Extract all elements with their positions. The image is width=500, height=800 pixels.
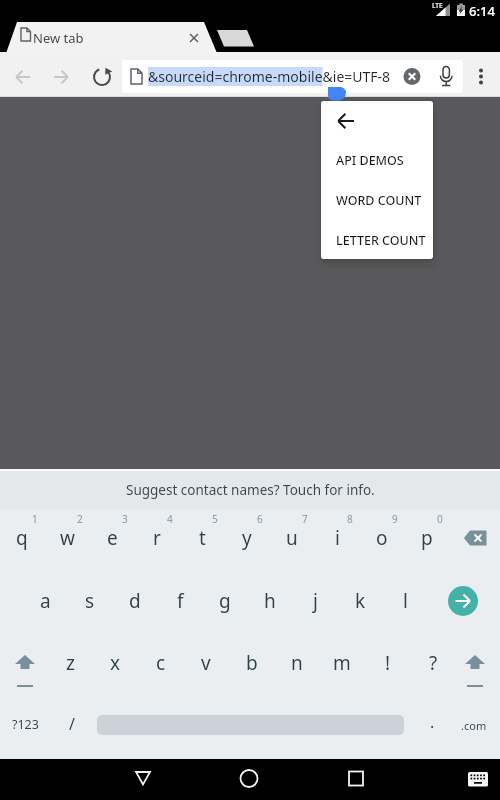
button[interactable]: ?123 [3,709,47,739]
staticText: y [242,525,252,551]
staticText: i [335,525,340,551]
staticText: r [153,525,161,551]
button[interactable]: .com [454,712,494,738]
button[interactable]: h [248,584,292,618]
staticText: New tab [33,29,84,47]
staticText: WORD COUNT [336,192,422,209]
button[interactable]: LETTER COUNT [321,220,433,259]
button[interactable]: . [417,707,447,737]
button[interactable] [453,523,497,553]
staticText: u [286,525,298,551]
staticText: 4 [167,512,173,526]
staticText: 6:14 [469,2,495,20]
button[interactable]: New tab [13,25,103,51]
button[interactable] [0,97,500,469]
staticText: 7 [302,512,308,526]
button[interactable]: b [230,646,274,680]
staticText: k [355,588,366,614]
button[interactable]: z [48,646,92,680]
staticText: 5 [212,512,218,526]
button[interactable]: e [90,521,134,555]
button[interactable] [3,648,47,680]
staticText: Suggest contact names? Touch for info. [126,481,375,499]
button[interactable]: g [203,584,247,618]
button[interactable] [333,109,359,133]
staticText: 8 [347,512,353,526]
button[interactable]: ! [366,646,410,680]
staticText: q [16,525,28,551]
button[interactable]: &sourceid=chrome-mobile&ie=UTF-8 [122,60,463,93]
staticText: 2 [77,512,83,526]
button[interactable] [463,764,493,794]
button[interactable]: p [405,521,449,555]
staticText: z [66,650,75,676]
staticText: ! [385,650,391,676]
staticText: 6 [257,512,263,526]
button[interactable]: t [180,521,224,555]
button[interactable]: s [68,584,112,618]
staticText: / [69,713,75,735]
staticText: c [156,650,166,676]
button[interactable]: m [320,646,364,680]
staticText: &sourceid=chrome-mobile&ie=UTF-8 [148,67,391,86]
button[interactable]: a [23,584,67,618]
button[interactable]: q [0,521,44,555]
button[interactable]: j [293,584,337,618]
button[interactable]: k [338,584,382,618]
staticText: b [246,650,258,676]
staticText: 0 [437,512,443,526]
staticText: .com [461,718,487,733]
staticText: h [264,588,276,614]
staticText: g [219,588,231,614]
staticText: 3 [122,512,128,526]
button[interactable] [448,586,478,616]
staticText: f [177,588,184,614]
button[interactable]: n [275,646,319,680]
staticText: p [421,525,433,551]
button[interactable]: v [184,646,228,680]
button[interactable]: w [45,521,89,555]
button[interactable] [341,764,371,794]
staticText: n [291,650,303,676]
button[interactable]: ? [411,646,455,680]
staticText: ? [429,650,438,676]
staticText: ?123 [12,716,39,733]
button[interactable] [128,764,158,794]
staticText: l [403,588,408,614]
staticText: . [430,711,435,733]
staticText: LTE [432,1,443,10]
staticText: a [40,588,51,614]
button[interactable]: y [225,521,269,555]
staticText: j [313,588,318,614]
button[interactable]: i [315,521,359,555]
button[interactable] [234,764,264,794]
button[interactable]: o [360,521,404,555]
staticText: t [199,525,206,551]
button[interactable] [453,648,497,680]
staticText: LETTER COUNT [336,232,426,249]
button[interactable]: x [93,646,137,680]
button[interactable]: / [52,709,92,739]
staticText: x [110,650,121,676]
button[interactable]: API DEMOS [321,140,433,180]
staticText: m [333,650,351,676]
button[interactable]: l [383,584,427,618]
staticText: API DEMOS [336,152,404,169]
staticText: 9 [392,512,398,526]
button[interactable]: u [270,521,314,555]
button[interactable]: f [158,584,202,618]
button[interactable]: d [113,584,157,618]
button[interactable]: r [135,521,179,555]
staticText: v [201,650,211,676]
staticText: w [60,525,75,551]
staticText: 1 [32,512,38,526]
staticText: d [129,588,141,614]
button[interactable]: c [139,646,183,680]
staticText: o [376,525,388,551]
staticText: e [107,525,118,551]
staticText: s [85,588,95,614]
button[interactable]: WORD COUNT [321,180,433,220]
button[interactable]: Suggest contact names? Touch for info. [0,471,500,509]
